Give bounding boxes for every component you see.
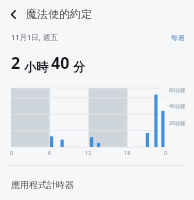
staticText: 魔法使的約定 <box>26 7 92 21</box>
staticText: 0 <box>10 149 14 156</box>
staticText: 0 <box>164 149 168 156</box>
staticText: 40分鐘 <box>169 102 186 109</box>
staticText: 20分鐘 <box>169 119 186 126</box>
staticText: 40 <box>51 52 70 74</box>
staticText: 2 <box>11 52 21 74</box>
button[interactable]: 應用程式計時器 <box>0 172 194 196</box>
staticText: 應用程式計時器 <box>11 179 74 190</box>
staticText: 60分鐘 <box>169 86 186 93</box>
staticText: 6 <box>48 149 52 156</box>
staticText: 11月1日, 週五 <box>11 32 58 42</box>
button[interactable]: 返回 <box>0 1 26 27</box>
staticText: 小時 <box>24 59 48 74</box>
staticText: 12 <box>85 149 92 156</box>
button[interactable]: 每週 <box>171 33 185 42</box>
staticText: 分 <box>73 59 85 74</box>
staticText: 每週 <box>171 33 185 42</box>
staticText: 18 <box>124 149 131 156</box>
